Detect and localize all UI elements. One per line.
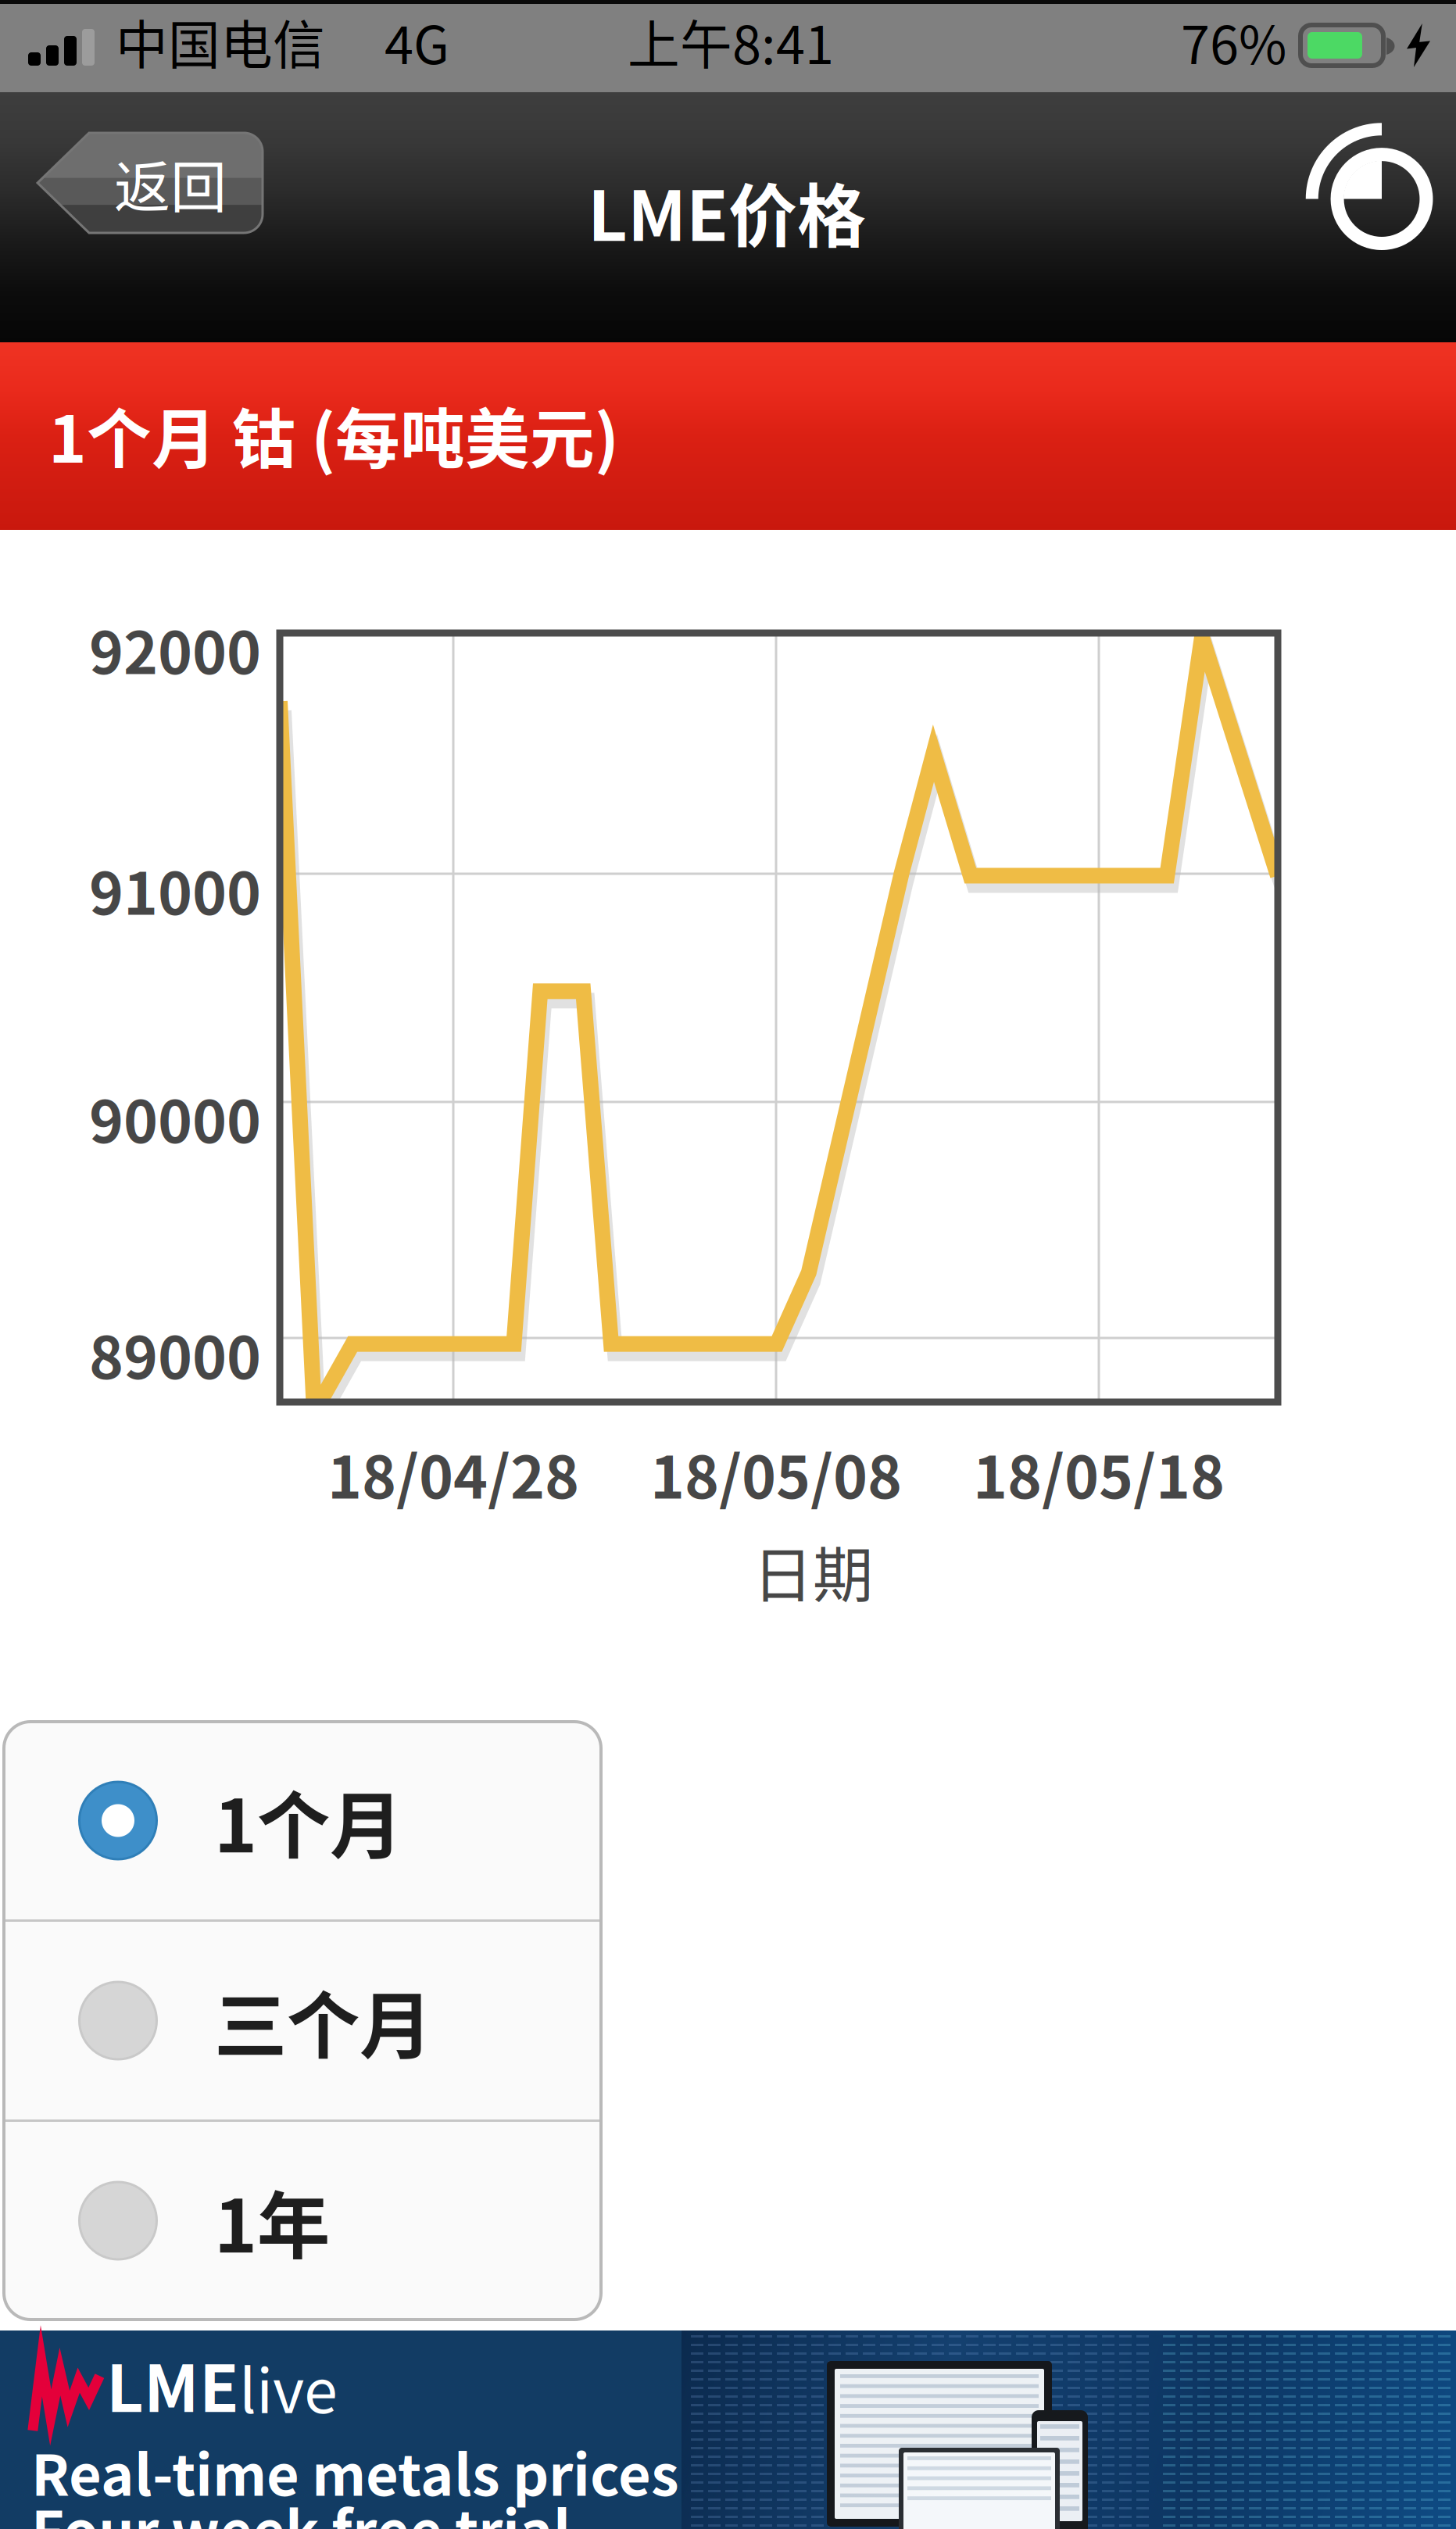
staticText: 90000 [89, 1075, 261, 1160]
button[interactable]: LMElive — real-time metals prices, four … [0, 0, 1456, 2529]
staticText: 18/04/28 [327, 1431, 579, 1515]
staticText: 三个月 [214, 1968, 432, 2073]
staticText: 1个月 [214, 1768, 402, 1873]
staticText: 返回 [114, 142, 227, 224]
staticText: 中国电信 [116, 4, 325, 79]
staticText: 76% [1181, 4, 1286, 79]
staticText: LME价格 [588, 161, 866, 261]
staticText: 1年 [214, 2168, 330, 2273]
button[interactable]: LME [1302, 117, 1435, 250]
staticText: live [239, 2343, 338, 2431]
staticText: Four week free trial [31, 2487, 571, 2529]
staticText: 1个月 钴 (每吨美元) [48, 388, 619, 481]
staticText: 18/05/08 [650, 1431, 902, 1515]
button[interactable]: 1年 [4, 2122, 601, 2320]
button[interactable]: 返回 [38, 133, 263, 233]
staticText: 91000 [89, 847, 261, 932]
button[interactable]: 三个月 [4, 1922, 601, 2119]
staticText: Real-time metals prices [31, 2430, 679, 2512]
staticText: 日期 [753, 1527, 873, 1615]
staticText: 4G [385, 4, 449, 79]
staticText: 18/05/18 [973, 1431, 1225, 1515]
staticText: 89000 [89, 1311, 261, 1396]
staticText: LME [106, 2337, 239, 2431]
staticText: 92000 [89, 606, 261, 691]
staticText: 上午8:41 [628, 4, 834, 79]
button[interactable]: 1个月 [4, 1722, 601, 1919]
